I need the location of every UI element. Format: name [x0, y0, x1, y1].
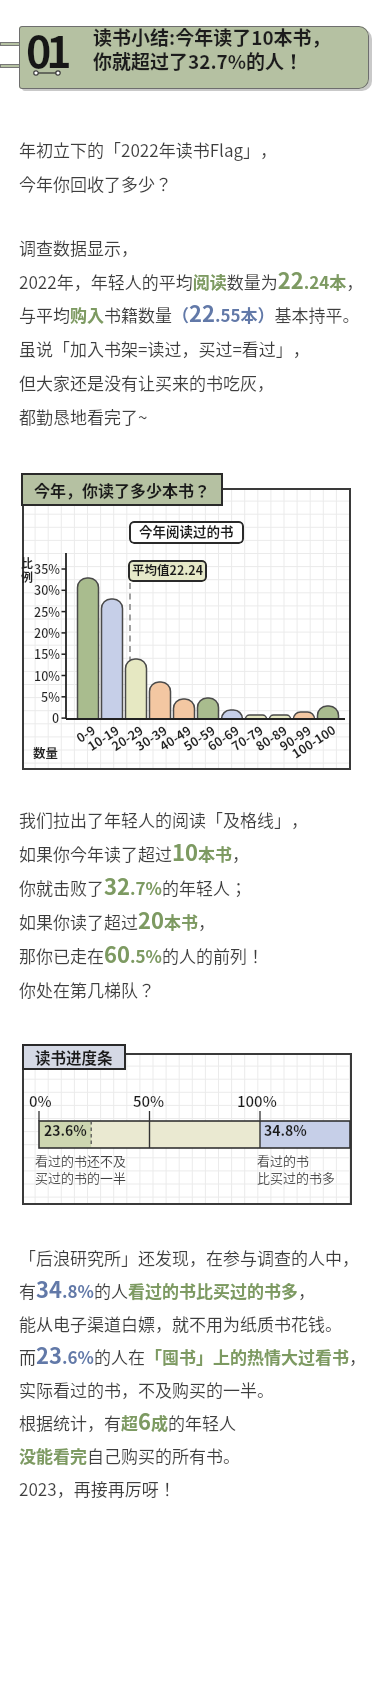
- staticText: 买过的书的一半: [35, 1169, 127, 1187]
- staticText: 50%: [133, 1094, 165, 1110]
- staticText: 看过的书: [257, 1152, 310, 1170]
- staticText: 15%: [34, 646, 60, 662]
- staticText: 例: [21, 571, 34, 585]
- staticText: 100-100: [290, 724, 339, 762]
- staticText: 「后浪研究所」还发现，在参与调查的人中，: [19, 1241, 359, 1271]
- staticText: 根据统计，有超6成的年轻人: [19, 1406, 236, 1436]
- staticText: 20-29: [110, 724, 146, 754]
- staticText: 比买过的书多: [257, 1169, 336, 1187]
- staticText: 5%: [41, 689, 60, 705]
- staticText: 100%: [237, 1094, 277, 1110]
- staticText: 那你已走在60.5%的人的前列！: [19, 939, 264, 969]
- staticText: 数量: [33, 747, 59, 761]
- staticText: 35%: [34, 561, 60, 577]
- staticText: 你就超过了32.7%的人！: [93, 50, 304, 74]
- staticText: 40-49: [158, 724, 194, 754]
- staticText: 80-89: [254, 724, 290, 754]
- staticText: 我们拉出了年轻人的阅读「及格线」，: [19, 803, 308, 833]
- staticText: 30-39: [134, 724, 170, 754]
- staticText: 读书进度条: [35, 1046, 113, 1068]
- staticText: 虽说「加入书架=读过，买过=看过」，: [19, 332, 310, 362]
- staticText: 70-79: [230, 724, 266, 754]
- staticText: 2022年，年轻人的平均阅读数量为22.24本，: [19, 265, 364, 295]
- staticText: 30%: [34, 582, 60, 598]
- staticText: 而23.6%的人在「囤书」上的热情大过看书，: [19, 1340, 366, 1370]
- staticText: 但大家还是没有让买来的书吃灰，: [19, 366, 274, 396]
- staticText: 比: [21, 557, 34, 571]
- staticText: 都勤恳地看完了~: [19, 400, 148, 430]
- staticText: 如果你今年读了超过10本书，: [19, 837, 249, 867]
- staticText: 读书小结:今年读了10本书，: [93, 26, 331, 50]
- staticText: 23.6%: [44, 1122, 87, 1140]
- staticText: 0%: [29, 1094, 52, 1110]
- staticText: 你处在第几梯队？: [19, 973, 155, 1003]
- staticText: 没能看完自己购买的所有书。: [19, 1439, 240, 1469]
- staticText: 90-99: [278, 724, 314, 754]
- button[interactable]: 读书进度条: [22, 1044, 126, 1070]
- staticText: 平均值22.24: [132, 565, 204, 578]
- staticText: 能从电子渠道白嫖，就不用为纸质书花钱。: [19, 1307, 342, 1337]
- staticText: 0: [52, 710, 60, 726]
- staticText: 2023，再接再厉呀！: [19, 1472, 176, 1502]
- staticText: 0-9: [75, 724, 99, 746]
- staticText: 与平均购入书籍数量（22.55本）基本持平。: [19, 298, 360, 328]
- staticText: 看过的书还不及: [35, 1152, 127, 1170]
- button[interactable]: [19, 26, 369, 89]
- staticText: 今年阅读过的书: [139, 526, 234, 540]
- staticText: 34.8%: [264, 1122, 307, 1140]
- staticText: 今年，你读了多少本书？: [34, 478, 211, 501]
- staticText: 50-59: [182, 724, 218, 754]
- staticText: 如果你读了超过20本书，: [19, 905, 215, 935]
- staticText: 25%: [34, 604, 60, 620]
- staticText: 实际看过的书，不及购买的一半。: [19, 1373, 274, 1403]
- staticText: 01: [26, 33, 67, 77]
- staticText: 60-69: [206, 724, 242, 754]
- button[interactable]: 今年，你读了多少本书？: [21, 473, 223, 506]
- staticText: 你就击败了32.7%的年轻人；: [19, 871, 247, 901]
- staticText: 10-19: [86, 724, 122, 754]
- staticText: 10%: [34, 668, 60, 684]
- staticText: 有34.8%的人看过的书比买过的书多，: [19, 1274, 315, 1304]
- staticText: 调查数据显示，: [19, 231, 138, 261]
- staticText: 20%: [34, 625, 60, 641]
- staticText: 年初立下的「2022年读书Flag」，: [19, 133, 278, 163]
- staticText: 今年你回收了多少？: [19, 167, 172, 197]
